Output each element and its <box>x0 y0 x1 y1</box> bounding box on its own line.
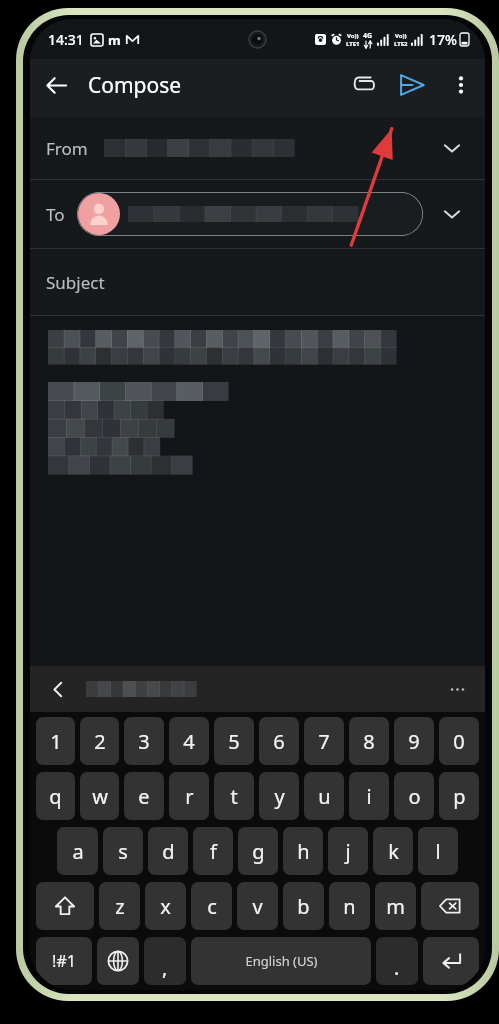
button[interactable]: Attach file <box>341 62 387 108</box>
button[interactable]: c <box>191 882 232 930</box>
staticText: Vo)) <box>347 32 359 40</box>
staticText: q <box>49 783 62 810</box>
button[interactable]: s <box>103 827 143 875</box>
button[interactable]: n <box>329 882 370 930</box>
button[interactable]: Expand <box>435 131 469 165</box>
button[interactable]: Expand <box>435 197 469 231</box>
button[interactable]: To <box>30 180 485 248</box>
button[interactable]: From <box>30 117 485 179</box>
button[interactable]: Change language <box>97 937 139 985</box>
button[interactable]: Back <box>30 59 82 111</box>
button[interactable]: 7 <box>304 717 344 765</box>
button[interactable]: 1 <box>36 717 75 765</box>
staticText: t <box>230 783 238 810</box>
button[interactable]: i <box>349 772 389 820</box>
staticText: d <box>162 838 175 865</box>
button[interactable]: y <box>259 772 299 820</box>
staticText: To <box>46 203 65 226</box>
staticText: a <box>72 838 84 865</box>
button[interactable]: t <box>214 772 254 820</box>
button[interactable]: j <box>328 827 368 875</box>
button[interactable]: a <box>57 827 98 875</box>
button[interactable]: g <box>238 827 278 875</box>
staticText: 8 <box>363 728 375 755</box>
button[interactable]: Enter <box>423 937 479 985</box>
button[interactable]: 8 <box>349 717 389 765</box>
staticText: From <box>46 137 88 160</box>
staticText: m <box>386 893 405 920</box>
staticText: English (US) <box>245 952 318 970</box>
staticText: 9 <box>408 728 420 755</box>
button[interactable]: English (US) <box>191 937 371 985</box>
staticText: 3 <box>138 728 150 755</box>
staticText: Subject <box>46 271 105 294</box>
button[interactable]: x <box>145 882 186 930</box>
button[interactable]: 0 <box>439 717 479 765</box>
button[interactable]: b <box>283 882 324 930</box>
button[interactable]: Shift <box>36 882 94 930</box>
button[interactable]: r <box>169 772 209 820</box>
staticText: c <box>207 893 217 920</box>
staticText: r <box>185 783 194 810</box>
staticText: b <box>297 893 310 920</box>
button[interactable] <box>86 681 196 697</box>
button[interactable]: w <box>80 772 119 820</box>
staticText: j <box>345 838 351 865</box>
staticText: 1 <box>50 728 62 755</box>
button[interactable]: l <box>418 827 458 875</box>
staticText: l <box>435 838 441 865</box>
staticText: 6 <box>273 728 285 755</box>
staticText: v <box>252 893 263 920</box>
staticText: x <box>160 893 171 920</box>
staticText: 4 <box>183 728 195 755</box>
staticText: 4G <box>363 31 373 41</box>
staticText: i <box>366 783 372 810</box>
button[interactable]: Send <box>387 60 437 110</box>
staticText: Vo)) <box>395 32 407 40</box>
button[interactable]: k <box>373 827 413 875</box>
staticText: p <box>453 783 466 810</box>
staticText: 2 <box>94 728 106 755</box>
button[interactable]: h <box>283 827 323 875</box>
button[interactable]: p <box>439 772 479 820</box>
staticText: LTE2 <box>394 40 408 48</box>
staticText: 7 <box>318 728 330 755</box>
button[interactable]: 4 <box>169 717 209 765</box>
button[interactable]: f <box>193 827 233 875</box>
staticText: h <box>297 838 310 865</box>
staticText: n <box>343 893 356 920</box>
button[interactable]: o <box>394 772 434 820</box>
button[interactable]: 2 <box>80 717 119 765</box>
button[interactable]: u <box>304 772 344 820</box>
staticText: . <box>394 954 400 981</box>
button[interactable]: 5 <box>214 717 254 765</box>
button[interactable]: !#1 <box>36 937 92 985</box>
button[interactable] <box>30 316 485 666</box>
button[interactable]: More options <box>437 61 485 109</box>
staticText: 5 <box>228 728 240 755</box>
button[interactable]: 6 <box>259 717 299 765</box>
button[interactable] <box>77 192 423 236</box>
button[interactable]: e <box>124 772 164 820</box>
staticText: 14:31 <box>48 30 84 49</box>
button[interactable]: Previous suggestion <box>38 669 78 709</box>
staticText: m <box>108 31 121 49</box>
button[interactable]: z <box>99 882 140 930</box>
staticText: g <box>252 838 265 865</box>
button[interactable]: q <box>36 772 75 820</box>
button[interactable]: d <box>148 827 188 875</box>
button[interactable]: Subject <box>30 249 485 315</box>
staticText: 0 <box>453 728 465 755</box>
staticText: o <box>408 783 421 810</box>
button[interactable]: , <box>144 937 186 985</box>
button[interactable]: More suggestions <box>439 671 475 707</box>
button[interactable]: 3 <box>124 717 164 765</box>
button[interactable]: Backspace <box>421 882 479 930</box>
staticText: y <box>274 783 285 810</box>
button[interactable]: 9 <box>394 717 434 765</box>
staticText: !#1 <box>52 950 76 972</box>
button[interactable]: v <box>237 882 278 930</box>
button[interactable]: m <box>375 882 416 930</box>
button[interactable]: . <box>376 937 418 985</box>
staticText: f <box>210 838 217 865</box>
